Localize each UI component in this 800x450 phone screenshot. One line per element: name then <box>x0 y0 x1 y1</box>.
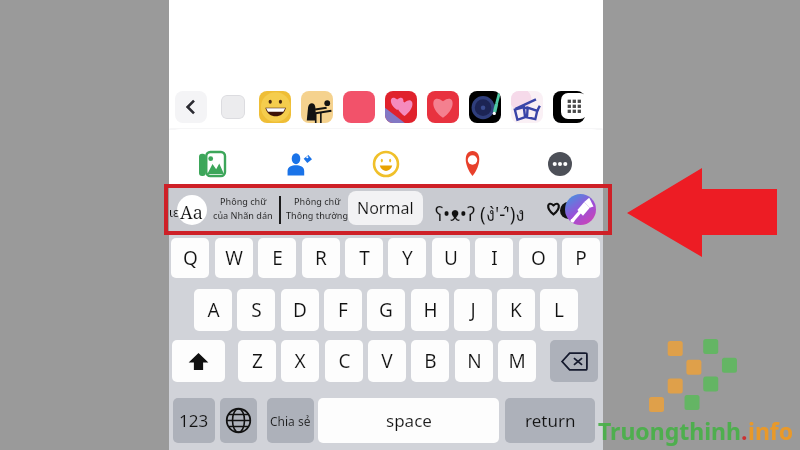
staticText: K <box>510 297 522 323</box>
button[interactable]: Record sticker <box>469 91 501 123</box>
staticText: Phông chữ <box>220 195 267 207</box>
staticText: Aa <box>180 200 203 225</box>
staticText: D <box>293 297 307 323</box>
staticText: Truongthinh <box>598 415 741 446</box>
button[interactable]: Shift <box>172 340 225 382</box>
staticText: Normal <box>357 197 414 219</box>
button[interactable]: Scene sticker <box>301 91 333 123</box>
button[interactable]: Location <box>429 139 516 188</box>
button[interactable]: Heart sticker <box>427 91 459 123</box>
staticText: info <box>748 415 794 446</box>
button[interactable]: E <box>258 238 296 278</box>
button[interactable]: More <box>516 139 603 188</box>
staticText: G <box>379 297 393 323</box>
staticText: U <box>444 245 458 271</box>
button[interactable]: U <box>432 238 470 278</box>
staticText: O <box>531 245 546 271</box>
staticText: Z <box>252 348 263 374</box>
staticText: X <box>294 348 306 374</box>
staticText: N <box>467 348 482 374</box>
staticText: V <box>381 348 393 374</box>
staticText: M <box>508 348 526 374</box>
button[interactable]: Back <box>175 91 207 123</box>
button[interactable]: ʕ•ᴥ•ʔ (ง'̀-'́)ง <box>435 199 525 229</box>
staticText: space <box>386 409 432 432</box>
staticText: C <box>338 348 351 374</box>
button[interactable]: S <box>237 289 275 331</box>
button[interactable]: C <box>325 340 363 382</box>
staticText: B <box>424 348 437 374</box>
button[interactable]: R <box>302 238 340 278</box>
staticText: I <box>491 245 498 271</box>
staticText: ɩɛ <box>169 204 179 220</box>
staticText: S <box>251 297 262 323</box>
button[interactable]: Change keyboard <box>220 398 257 443</box>
staticText: Thông thường <box>286 209 349 221</box>
staticText: Phông chữ <box>294 195 341 207</box>
button[interactable]: Y <box>388 238 426 278</box>
button[interactable]: space <box>318 398 499 443</box>
button[interactable]: Q <box>171 238 209 278</box>
staticText: W <box>225 245 243 271</box>
staticText: Y <box>402 245 413 271</box>
button[interactable]: Friends <box>255 139 342 188</box>
button[interactable] <box>177 195 207 225</box>
button[interactable]: T <box>345 238 383 278</box>
staticText: . <box>741 415 748 446</box>
staticText: Q <box>183 245 198 271</box>
staticText: P <box>575 245 587 271</box>
button[interactable]: I <box>475 238 513 278</box>
button[interactable]: Phông chữ <box>213 195 273 221</box>
button[interactable]: J <box>454 289 492 331</box>
button[interactable]: N <box>455 340 493 382</box>
button[interactable]: Delete <box>550 340 598 382</box>
button[interactable]: 123 <box>173 398 215 443</box>
button[interactable]: Color picker <box>565 194 596 225</box>
staticText: J <box>470 297 476 323</box>
button[interactable]: A <box>194 289 232 331</box>
button[interactable]: Glasses sticker <box>511 91 543 123</box>
staticText: E <box>272 245 283 271</box>
button[interactable]: X <box>281 340 319 382</box>
staticText: A <box>207 297 220 323</box>
button[interactable]: K <box>497 289 535 331</box>
button[interactable]: Normal <box>348 191 423 225</box>
button[interactable]: H <box>411 289 449 331</box>
staticText: Chia sẻ <box>270 413 311 429</box>
staticText: R <box>315 245 327 271</box>
staticText: return <box>525 409 576 432</box>
button[interactable]: Emoji stickers <box>259 91 291 123</box>
button[interactable]: D <box>281 289 319 331</box>
button[interactable]: Recent <box>217 91 249 123</box>
button[interactable]: Hearts sticker <box>385 91 417 123</box>
button[interactable]: P <box>562 238 600 278</box>
button[interactable]: G <box>367 289 405 331</box>
button[interactable]: M <box>498 340 536 382</box>
button[interactable]: O <box>519 238 557 278</box>
staticText: ʕ•ᴥ•ʔ (ง'̀-'́)ง <box>435 199 525 229</box>
staticText: L <box>554 297 564 323</box>
staticText: F <box>338 297 348 323</box>
button[interactable]: Photos <box>169 139 255 188</box>
button[interactable]: return <box>505 398 595 443</box>
button[interactable]: Chia sẻ <box>267 398 314 443</box>
staticText: H <box>423 297 438 323</box>
button[interactable]: L <box>540 289 578 331</box>
button[interactable]: All stickers <box>553 91 585 123</box>
button[interactable]: F <box>324 289 362 331</box>
staticText: của Nhãn dán <box>213 209 273 221</box>
button[interactable]: Z <box>238 340 276 382</box>
button[interactable]: B <box>411 340 449 382</box>
button[interactable]: V <box>368 340 406 382</box>
button[interactable]: W <box>215 238 253 278</box>
staticText: 123 <box>179 409 209 432</box>
staticText: T <box>359 245 370 271</box>
button[interactable]: Favorite <box>547 202 560 215</box>
button[interactable]: Pink sticker <box>343 91 375 123</box>
button[interactable]: Emoji <box>342 139 429 188</box>
button[interactable]: Phông chữ <box>285 195 349 221</box>
